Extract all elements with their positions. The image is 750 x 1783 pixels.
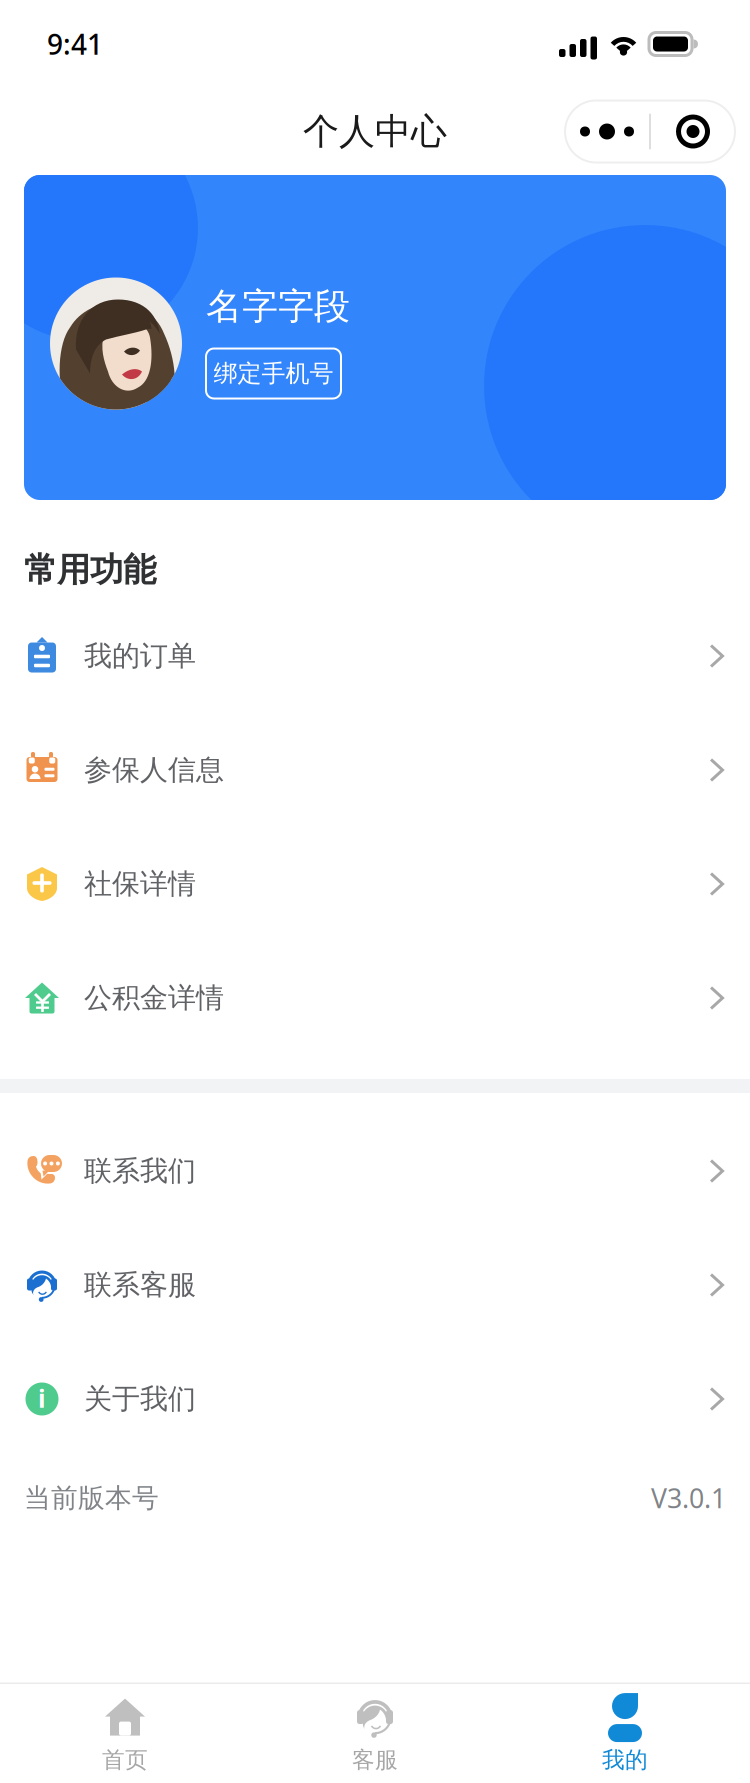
staticText: 客服 bbox=[352, 1746, 398, 1774]
staticText: 名字字段 bbox=[206, 284, 350, 329]
button[interactable]: 社保详情 bbox=[0, 827, 750, 941]
staticText: V3.0.1 bbox=[651, 1480, 726, 1516]
staticText: 首页 bbox=[102, 1746, 148, 1774]
button[interactable]: 公积金详情 bbox=[0, 941, 750, 1055]
button[interactable]: 首页 bbox=[0, 1684, 250, 1783]
staticText: 联系客服 bbox=[84, 1268, 196, 1302]
staticText: 常用功能 bbox=[24, 549, 156, 590]
button[interactable]: 客服 bbox=[250, 1684, 500, 1783]
staticText: 我的 bbox=[602, 1746, 648, 1774]
staticText: 9:41 bbox=[47, 25, 103, 63]
staticText: i bbox=[38, 1381, 46, 1415]
staticText: 联系我们 bbox=[84, 1154, 196, 1188]
button[interactable]: i bbox=[0, 1342, 750, 1456]
staticText: 个人中心 bbox=[303, 109, 447, 154]
staticText: 我的订单 bbox=[84, 639, 196, 673]
button[interactable]: 联系我们 bbox=[0, 1114, 750, 1228]
button[interactable]: 参保人信息 bbox=[0, 713, 750, 827]
button[interactable]: 联系客服 bbox=[0, 1228, 750, 1342]
button[interactable]: 我的订单 bbox=[0, 599, 750, 713]
button[interactable]: 绑定手机号 bbox=[206, 348, 341, 398]
staticText: 当前版本号 bbox=[24, 1482, 159, 1514]
staticText: 公积金详情 bbox=[84, 981, 224, 1015]
button[interactable]: More options and close bbox=[565, 100, 735, 162]
staticText: 关于我们 bbox=[84, 1382, 196, 1416]
button[interactable]: 我的 bbox=[500, 1684, 750, 1783]
staticText: 社保详情 bbox=[84, 867, 196, 901]
staticText: 参保人信息 bbox=[84, 753, 224, 787]
staticText: 绑定手机号 bbox=[213, 359, 333, 388]
